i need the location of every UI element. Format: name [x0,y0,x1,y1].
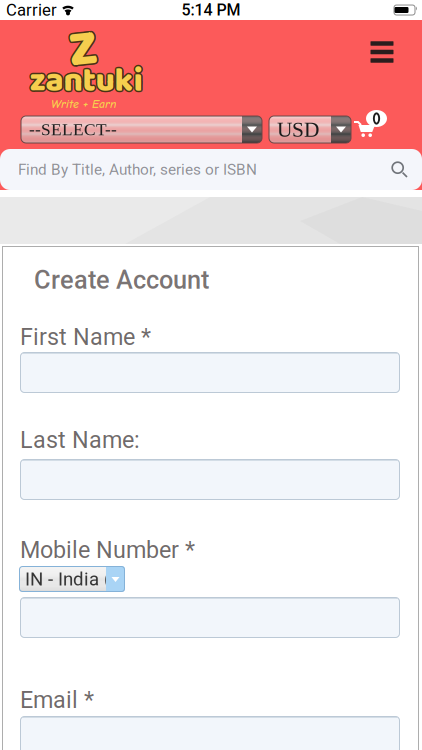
staticText: Email * [20,686,94,714]
staticText: USD [277,118,319,141]
staticText: zantuki [29,54,142,108]
staticText: zantuki [29,56,142,109]
staticText: zantuki [28,53,141,107]
staticText: zantuki [31,54,144,108]
staticText: Z [67,9,95,91]
staticText: zantuki [28,55,141,109]
staticText: Z [68,10,96,92]
staticText: Last Name: [20,426,140,454]
staticText: Carrier [6,0,57,20]
button[interactable]: Menu [367,39,397,65]
staticText: zantuki [31,53,144,107]
staticText: zantuki [31,55,144,109]
staticText: Write + Earn [51,97,117,111]
button[interactable]: IN - India (· [19,566,125,592]
staticText: Z [70,8,98,89]
staticText: First Name * [20,323,151,351]
staticText: zantuki [28,54,141,108]
staticText: IN - India (· [25,568,115,590]
staticText: Z [70,10,98,92]
button[interactable]: --SELECT-- [21,116,262,143]
staticText: 5:14 PM [181,1,240,19]
staticText: Create Account [34,265,209,295]
staticText: zantuki [29,53,142,106]
staticText: Z [68,8,96,89]
staticText: Z [69,9,97,91]
staticText: Z [69,8,97,89]
button[interactable]: Cart [354,110,388,138]
button[interactable]: USD [269,116,351,143]
staticText: --SELECT-- [29,120,117,139]
staticText: Z [69,11,97,92]
staticText: Z [70,9,98,91]
button[interactable]: Search [0,149,422,190]
staticText: Mobile Number * [20,536,195,564]
staticText: Find By Title, Author, series or ISBN [18,160,257,178]
